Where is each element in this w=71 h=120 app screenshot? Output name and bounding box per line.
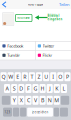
button[interactable]: J	[47, 84, 53, 93]
button[interactable]: Leerzeichen	[27, 108, 53, 117]
button[interactable]: Twitter	[35, 41, 71, 50]
staticText: F	[27, 85, 30, 92]
staticText: J	[49, 85, 50, 92]
button[interactable]: K	[54, 84, 60, 93]
button[interactable]: Q	[0, 72, 7, 81]
staticText: O	[58, 73, 62, 80]
staticText: D	[19, 85, 23, 92]
staticText: E	[16, 73, 19, 80]
staticText: 123	[4, 110, 10, 114]
button[interactable]: S	[11, 84, 17, 93]
staticText: M	[54, 97, 59, 104]
button[interactable]: I	[50, 72, 56, 81]
button[interactable]: V	[32, 96, 39, 105]
button[interactable]: M	[54, 96, 60, 105]
staticText: Facebook	[7, 43, 23, 48]
staticText: K	[55, 85, 58, 92]
button[interactable]: Facebook	[0, 41, 35, 50]
staticText: Q	[1, 73, 5, 80]
staticText: W	[8, 73, 13, 80]
staticText: Fotoname	[17, 16, 30, 20]
button[interactable]	[54, 108, 59, 117]
staticText: A	[6, 85, 9, 92]
button[interactable]: H	[39, 84, 46, 93]
staticText: FOTO TEILEN	[28, 3, 43, 6]
staticText: N	[48, 97, 52, 104]
button[interactable]	[13, 108, 19, 117]
button[interactable]: O	[57, 72, 63, 81]
button[interactable]: W	[7, 72, 14, 81]
button[interactable]: L	[61, 84, 67, 93]
button[interactable]: D	[18, 84, 24, 93]
staticText: Bildtitel eingeben	[47, 14, 62, 21]
staticText: S	[13, 85, 16, 92]
staticText: Flickr	[43, 53, 53, 58]
button[interactable]: Teilen	[57, 0, 71, 9]
staticText: L	[62, 85, 65, 92]
button[interactable]: N	[47, 96, 53, 105]
button[interactable]: Tumblr	[0, 51, 35, 60]
staticText: I	[52, 73, 54, 80]
button[interactable]: Back	[0, 0, 11, 9]
button[interactable]: U	[43, 72, 49, 81]
staticText: U	[44, 73, 48, 80]
staticText: R	[23, 73, 26, 80]
button[interactable]: F	[25, 84, 31, 93]
staticText: C	[27, 97, 30, 104]
staticText: Twitter	[43, 43, 55, 48]
staticText: P	[66, 73, 69, 80]
button[interactable]: B	[39, 96, 46, 105]
button[interactable]: C	[25, 96, 31, 105]
button[interactable]	[2, 96, 10, 105]
staticText: H	[41, 85, 45, 92]
staticText: B	[41, 97, 44, 104]
button[interactable]: Y	[11, 96, 17, 105]
staticText: Teilen	[59, 2, 69, 7]
staticText: T	[30, 73, 33, 80]
button[interactable]: G	[32, 84, 39, 93]
button[interactable]: E	[15, 72, 21, 81]
staticText: V	[34, 97, 37, 104]
staticText: Y	[13, 97, 16, 104]
button[interactable]: P	[64, 72, 70, 81]
button[interactable]	[61, 96, 69, 105]
staticText: Tumblr	[7, 53, 20, 58]
button[interactable]	[20, 108, 26, 117]
staticText: X	[20, 97, 23, 104]
button[interactable]: R	[22, 72, 28, 81]
button[interactable]: A	[4, 84, 10, 93]
staticText: G	[33, 85, 37, 92]
button[interactable]: 123	[3, 108, 12, 117]
staticText: Z	[37, 73, 40, 80]
button[interactable]: Flickr	[35, 51, 71, 60]
button[interactable]: Z	[36, 72, 42, 81]
staticText: Leerzeichen	[31, 110, 48, 114]
button[interactable]: T	[29, 72, 35, 81]
button[interactable]	[60, 108, 68, 117]
button[interactable]: X	[18, 96, 24, 105]
